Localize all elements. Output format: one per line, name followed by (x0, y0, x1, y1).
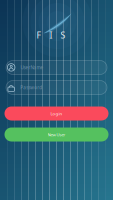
staticText: Password (20, 84, 42, 91)
staticText: Login (50, 111, 62, 116)
staticText: I (49, 29, 52, 41)
staticText: New User (47, 132, 65, 137)
button[interactable]: New User (4, 127, 108, 141)
button[interactable]: Login (4, 106, 108, 120)
staticText: S (60, 29, 65, 41)
staticText: F (36, 29, 41, 41)
staticText: UserName (20, 64, 43, 71)
